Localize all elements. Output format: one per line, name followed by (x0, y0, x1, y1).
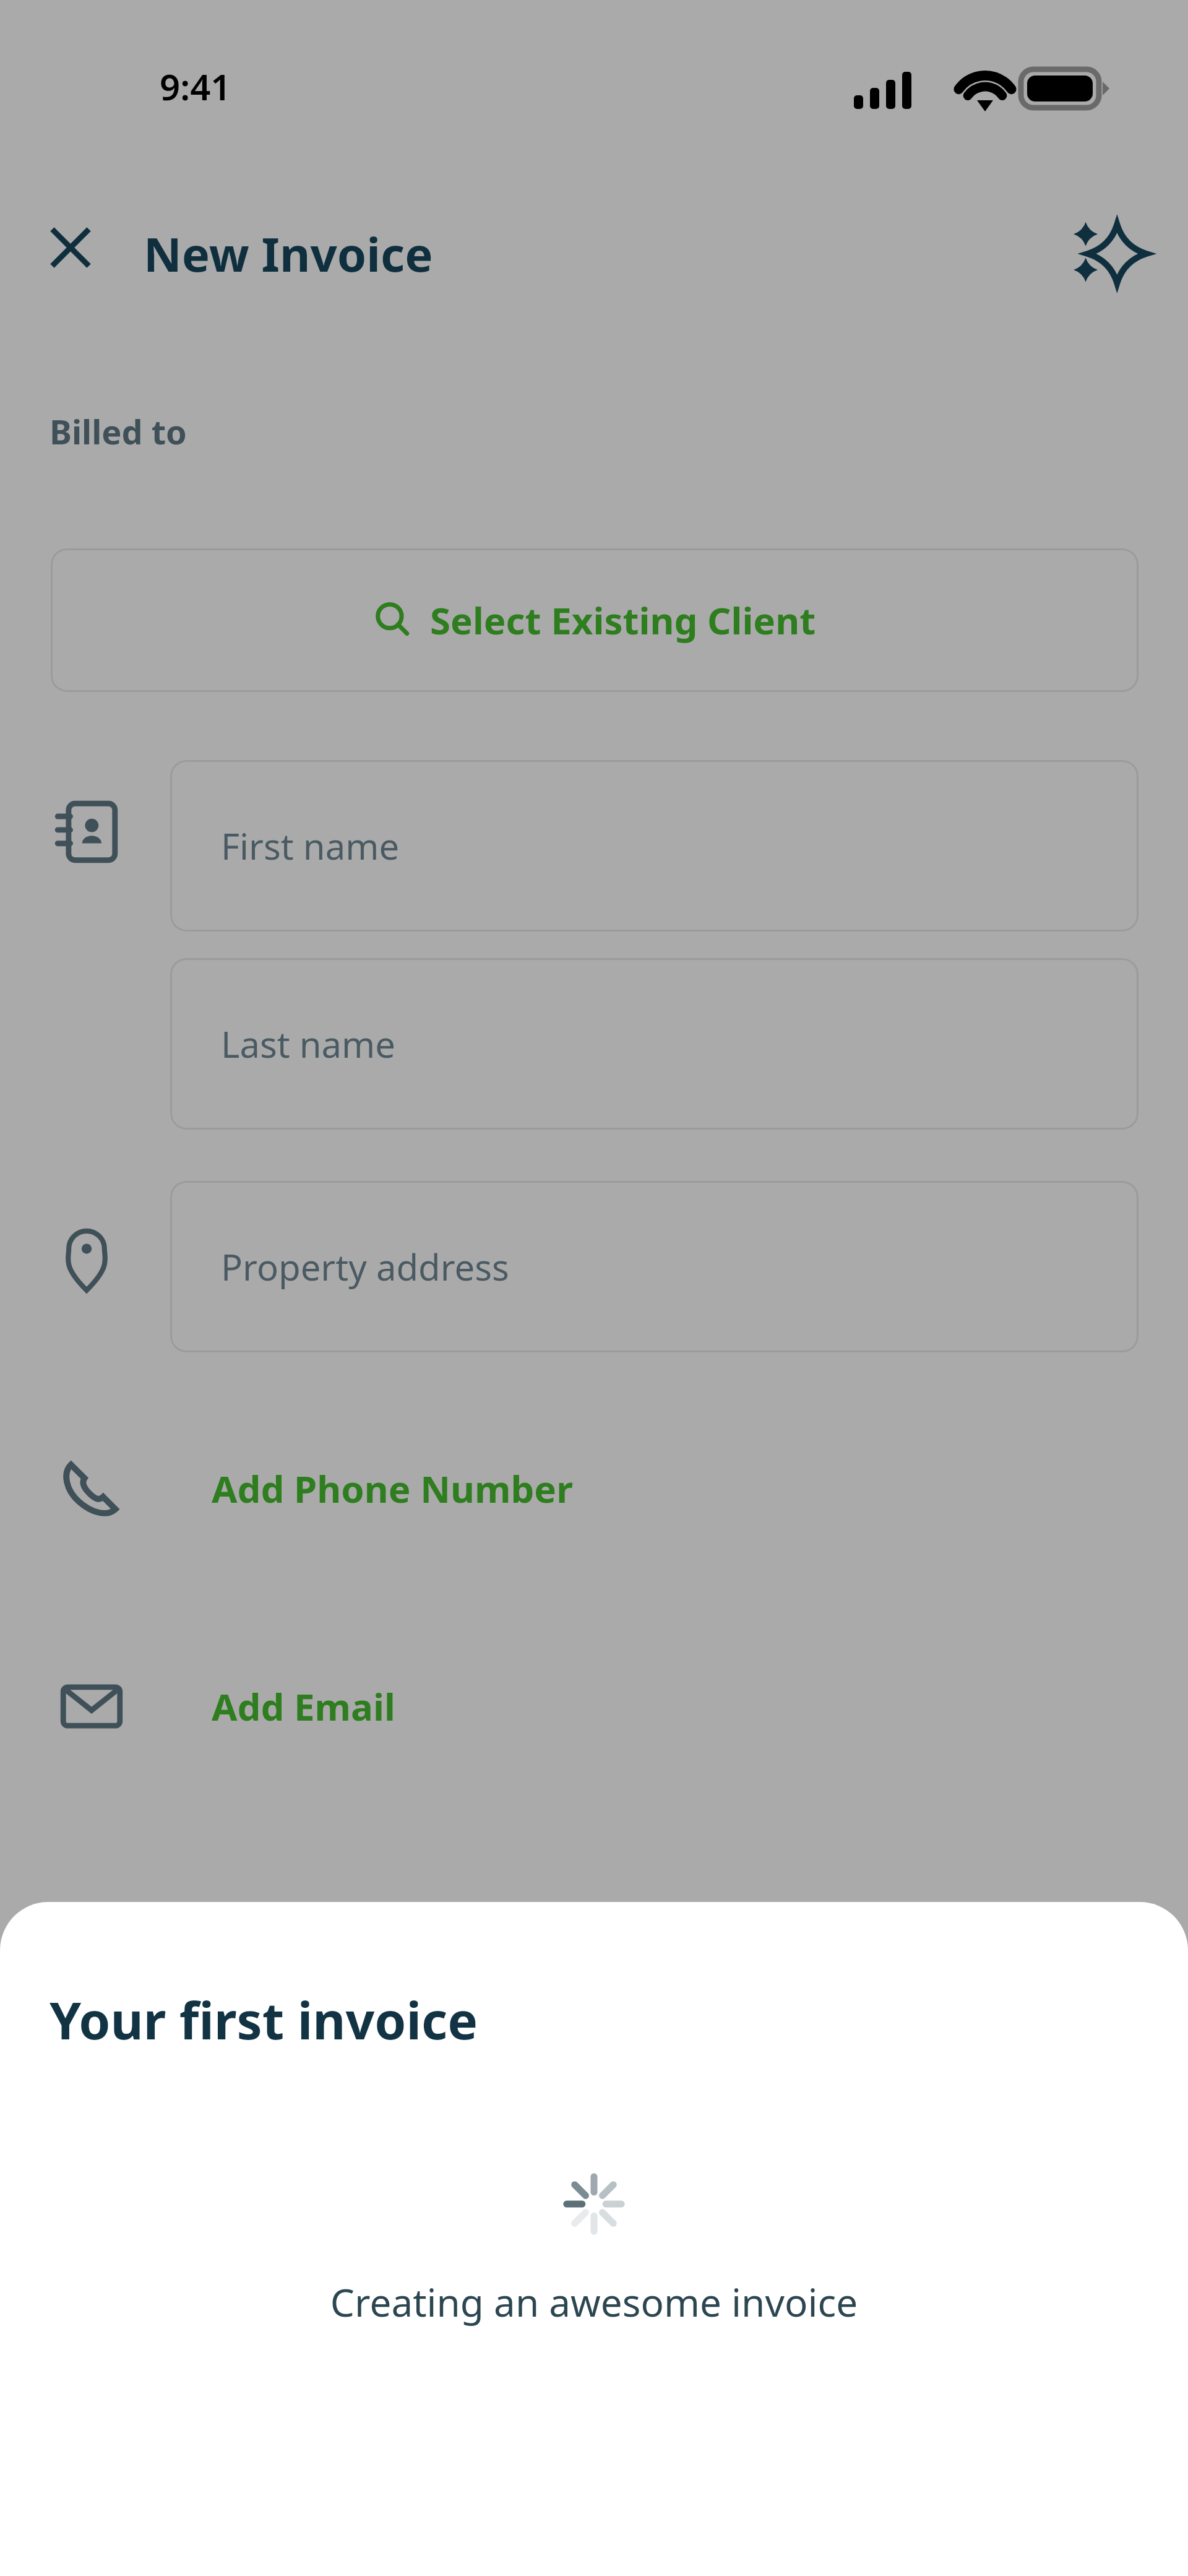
button[interactable]: Property address (170, 1181, 1138, 1352)
button[interactable]: Select Existing Client (51, 548, 1138, 692)
button[interactable]: Add Email (51, 1660, 1138, 1753)
button[interactable]: Close (31, 208, 110, 287)
button[interactable]: Last name (170, 958, 1138, 1130)
button[interactable]: Add Phone Number (51, 1442, 1138, 1535)
staticText: 9:41 (160, 62, 231, 111)
staticText: Select Existing Client (430, 595, 816, 646)
button[interactable]: First name (170, 760, 1138, 931)
button[interactable]: AI assist (1059, 205, 1156, 302)
staticText: Billed to (49, 408, 187, 454)
staticText: Last name (221, 1019, 396, 1068)
staticText: Property address (221, 1242, 509, 1291)
staticText: Add Phone Number (212, 1463, 573, 1514)
staticText: New Invoice (144, 222, 433, 286)
staticText: First name (221, 821, 400, 870)
staticText: Creating an awesome invoice (0, 2276, 1188, 2328)
staticText: Your first invoice (49, 1985, 478, 2054)
staticText: Add Email (212, 1681, 395, 1732)
